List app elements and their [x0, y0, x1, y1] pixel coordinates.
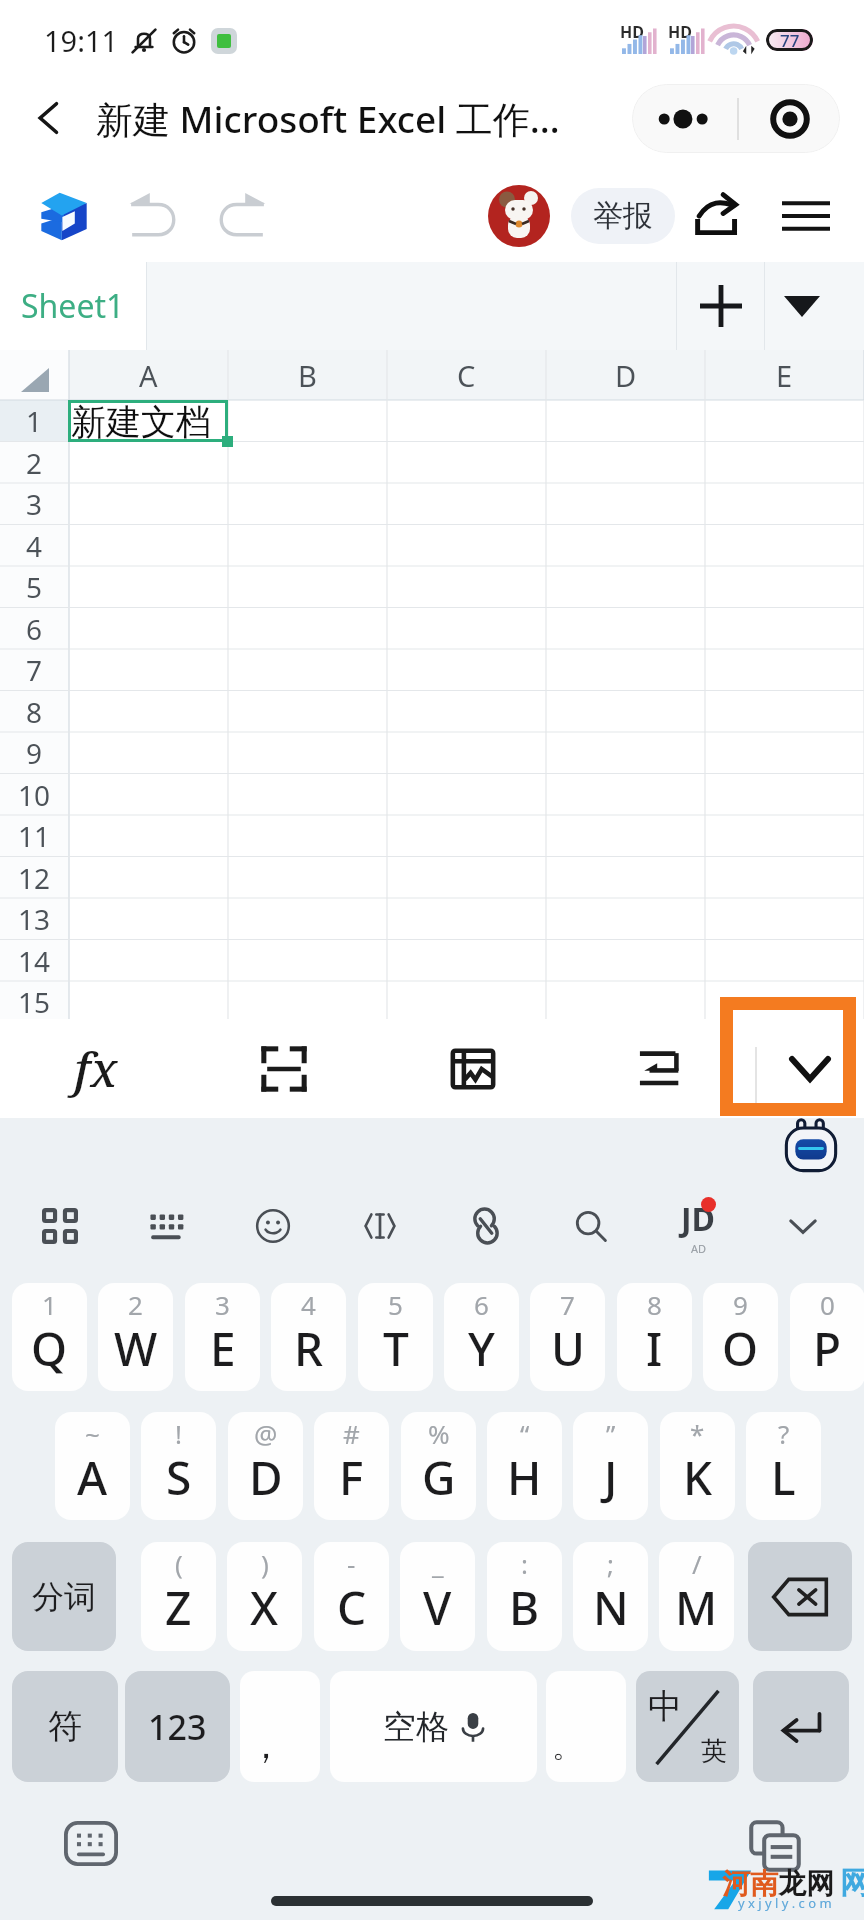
button[interactable]: 5: [358, 1283, 433, 1391]
button[interactable]: Recents: [748, 1819, 802, 1873]
button[interactable]: (: [141, 1542, 216, 1651]
staticText: S: [166, 1446, 192, 1509]
button[interactable]: _: [400, 1542, 475, 1651]
staticText: R: [294, 1317, 324, 1380]
button[interactable]: Grid: [22, 1188, 98, 1264]
button[interactable]: Scan: [240, 1019, 328, 1118]
button[interactable]: 1: [12, 1283, 87, 1391]
button[interactable]: !: [141, 1412, 216, 1520]
button[interactable]: Emoji: [235, 1188, 311, 1264]
button[interactable]: 9: [703, 1283, 778, 1391]
button[interactable]: 4: [271, 1283, 346, 1391]
button[interactable]: 空格: [330, 1671, 537, 1782]
button[interactable]: 2: [98, 1283, 173, 1391]
staticText: fx: [74, 1036, 118, 1101]
staticText: /: [692, 1546, 702, 1581]
button[interactable]: 中: [636, 1671, 739, 1782]
button[interactable]: Avatar: [488, 185, 550, 247]
button[interactable]: :: [487, 1542, 562, 1651]
button[interactable]: Insert image: [429, 1019, 517, 1118]
staticText: 2: [26, 444, 43, 482]
button[interactable]: Back: [18, 87, 80, 149]
staticText: Z: [165, 1576, 192, 1639]
button[interactable]: 3: [185, 1283, 260, 1391]
staticText: 12: [18, 859, 51, 897]
staticText: N: [593, 1576, 629, 1639]
staticText: 符: [48, 1705, 82, 1748]
button[interactable]: Sheet list: [765, 262, 864, 350]
button[interactable]: Search: [553, 1188, 629, 1264]
button[interactable]: Undo: [120, 182, 188, 250]
staticText: 3: [215, 1287, 230, 1322]
button[interactable]: Clip: [448, 1188, 524, 1264]
button[interactable]: Formula: [52, 1019, 140, 1118]
staticText: 英: [701, 1735, 727, 1768]
button[interactable]: ): [227, 1542, 302, 1651]
button[interactable]: ”: [573, 1412, 648, 1520]
button[interactable]: Backspace: [748, 1542, 852, 1651]
button[interactable]: 举报: [571, 188, 675, 244]
button[interactable]: “: [487, 1412, 562, 1520]
button[interactable]: ~: [55, 1412, 130, 1520]
staticText: 10: [18, 776, 51, 814]
staticText: @: [254, 1416, 278, 1451]
staticText: U: [551, 1317, 585, 1380]
button[interactable]: Cursor: [342, 1188, 418, 1264]
button[interactable]: ?: [746, 1412, 821, 1520]
button[interactable]: Share: [686, 182, 754, 250]
staticText: 新建 Microsoft Excel 工作…: [96, 93, 560, 144]
button[interactable]: JD: [660, 1188, 736, 1264]
button[interactable]: %: [401, 1412, 476, 1520]
staticText: 15: [18, 983, 51, 1021]
button[interactable]: Menu: [772, 182, 840, 250]
button[interactable]: 8: [617, 1283, 692, 1391]
button[interactable]: 。: [546, 1671, 626, 1782]
staticText: V: [423, 1576, 452, 1639]
staticText: 11: [18, 817, 51, 855]
staticText: y x j y l y . c o m: [738, 1894, 832, 1912]
staticText: 2: [128, 1287, 143, 1322]
button[interactable]: Enter: [753, 1671, 849, 1782]
button[interactable]: Close: [739, 84, 840, 153]
button[interactable]: @: [228, 1412, 303, 1520]
staticText: 。: [552, 1728, 582, 1766]
button[interactable]: Keyboard: [129, 1188, 205, 1264]
staticText: M: [675, 1576, 718, 1639]
staticText: 6: [474, 1287, 489, 1322]
button[interactable]: 0: [790, 1283, 864, 1391]
button[interactable]: Hide keyboard: [772, 1019, 848, 1118]
staticText: 网: [840, 1864, 864, 1902]
button[interactable]: More: [632, 84, 737, 153]
button[interactable]: ;: [573, 1542, 648, 1651]
button[interactable]: ，: [240, 1671, 320, 1782]
button[interactable]: App logo: [30, 182, 98, 250]
button[interactable]: Enter: [618, 1019, 706, 1118]
button[interactable]: 分词: [12, 1542, 116, 1651]
staticText: 13: [18, 900, 51, 938]
button[interactable]: Switch keyboard: [64, 1821, 118, 1866]
staticText: -: [347, 1546, 356, 1581]
staticText: 14: [18, 942, 51, 980]
staticText: 8: [26, 693, 43, 731]
button[interactable]: 123: [125, 1671, 230, 1782]
button[interactable]: /: [659, 1542, 734, 1651]
button[interactable]: -: [314, 1542, 389, 1651]
button[interactable]: Collapse: [765, 1188, 841, 1264]
staticText: H: [507, 1446, 542, 1509]
staticText: Sheet1: [21, 284, 125, 328]
button[interactable]: 7: [530, 1283, 605, 1391]
button[interactable]: #: [314, 1412, 389, 1520]
button[interactable]: *: [660, 1412, 735, 1520]
staticText: 中: [648, 1685, 682, 1728]
button[interactable]: 6: [444, 1283, 519, 1391]
staticText: ”: [606, 1416, 616, 1451]
staticText: 0: [820, 1287, 835, 1322]
button[interactable]: Redo: [207, 182, 275, 250]
button[interactable]: 符: [12, 1671, 118, 1782]
staticText: 7: [560, 1287, 575, 1322]
staticText: Y: [468, 1317, 495, 1380]
staticText: ): [261, 1546, 269, 1581]
button[interactable]: Sheet1: [0, 262, 146, 350]
staticText: %: [428, 1416, 450, 1451]
button[interactable]: Add sheet: [677, 262, 764, 350]
